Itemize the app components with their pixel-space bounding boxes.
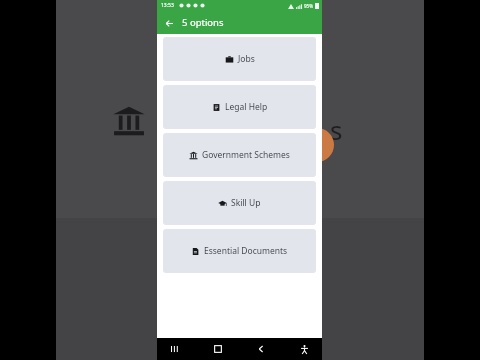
staticText: Jobs [238,53,255,65]
button[interactable]: Back [160,14,178,32]
staticText: Government Schemes [202,149,290,161]
button[interactable]: Back [253,341,269,357]
button[interactable]: Jobs [163,37,316,81]
button[interactable]: Accessibility [296,341,312,357]
button[interactable]: Home [210,341,226,357]
staticText: Essential Documents [204,245,288,257]
staticText: Skill Up [231,197,261,209]
staticText: 13:53 [161,2,174,9]
button[interactable]: Government Schemes [163,133,316,177]
button[interactable]: Skill Up [163,181,316,225]
staticText: Legal Help [225,101,268,113]
staticText: s [330,112,343,147]
staticText: 5 options [182,16,224,29]
staticText: 95% [304,3,313,9]
button[interactable]: Essential Documents [163,229,316,273]
button[interactable]: Recent apps [167,341,183,357]
button[interactable]: Legal Help [163,85,316,129]
